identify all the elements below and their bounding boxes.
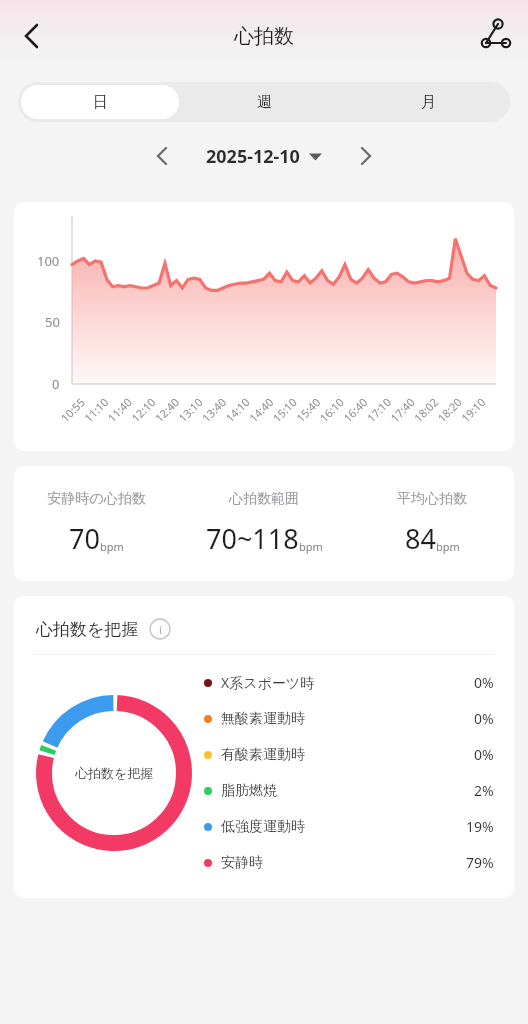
- staticText: 無酸素運動時: [221, 710, 305, 728]
- button[interactable]: 脂肪燃焼: [204, 781, 494, 800]
- staticText: bpm: [100, 539, 124, 554]
- staticText: 月: [421, 93, 436, 112]
- button[interactable]: X系スポーツ時: [204, 673, 494, 692]
- staticText: 脂肪燃焼: [221, 782, 277, 800]
- staticText: 低強度運動時: [221, 818, 305, 836]
- staticText: 84: [405, 520, 436, 557]
- button[interactable]: Information: [149, 618, 171, 640]
- button[interactable]: 2025-12-10: [206, 144, 322, 169]
- staticText: 心拍数を把握: [75, 765, 154, 781]
- staticText: bpm: [299, 539, 323, 554]
- staticText: 19%: [466, 817, 494, 836]
- button[interactable]: 低強度運動時: [204, 817, 494, 836]
- staticText: 70: [69, 520, 100, 557]
- staticText: 0%: [474, 709, 494, 728]
- staticText: 心拍数を把握: [36, 619, 139, 640]
- staticText: 2025-12-10: [206, 144, 300, 169]
- staticText: 安静時: [221, 854, 263, 872]
- staticText: bpm: [436, 539, 460, 554]
- staticText: 日: [93, 93, 108, 112]
- button[interactable]: 週: [185, 85, 343, 119]
- staticText: 70~118: [206, 520, 299, 557]
- staticText: 有酸素運動時: [221, 746, 305, 764]
- staticText: 79%: [466, 853, 494, 872]
- staticText: 心拍数: [234, 24, 294, 49]
- staticText: X系スポーツ時: [221, 673, 315, 692]
- button[interactable]: 無酸素運動時: [204, 709, 494, 728]
- button[interactable]: Share: [472, 13, 518, 59]
- button[interactable]: [14, 202, 514, 451]
- staticText: 週: [257, 93, 272, 112]
- staticText: 安静時の心拍数: [47, 490, 146, 508]
- button[interactable]: Next day: [346, 136, 386, 176]
- staticText: 心拍数範囲: [229, 490, 299, 508]
- staticText: 0%: [474, 673, 494, 692]
- staticText: 平均心拍数: [397, 490, 467, 508]
- button[interactable]: 有酸素運動時: [204, 745, 494, 764]
- button[interactable]: Previous day: [142, 136, 182, 176]
- staticText: i: [159, 622, 162, 637]
- button[interactable]: 心拍数を把握: [14, 596, 514, 898]
- button[interactable]: 日: [21, 85, 179, 119]
- button[interactable]: 安静時の心拍数: [14, 466, 514, 581]
- button[interactable]: 月: [349, 85, 507, 119]
- button[interactable]: 安静時: [204, 853, 494, 872]
- button[interactable]: Back: [8, 12, 56, 60]
- staticText: 0%: [474, 745, 494, 764]
- staticText: 2%: [474, 781, 494, 800]
